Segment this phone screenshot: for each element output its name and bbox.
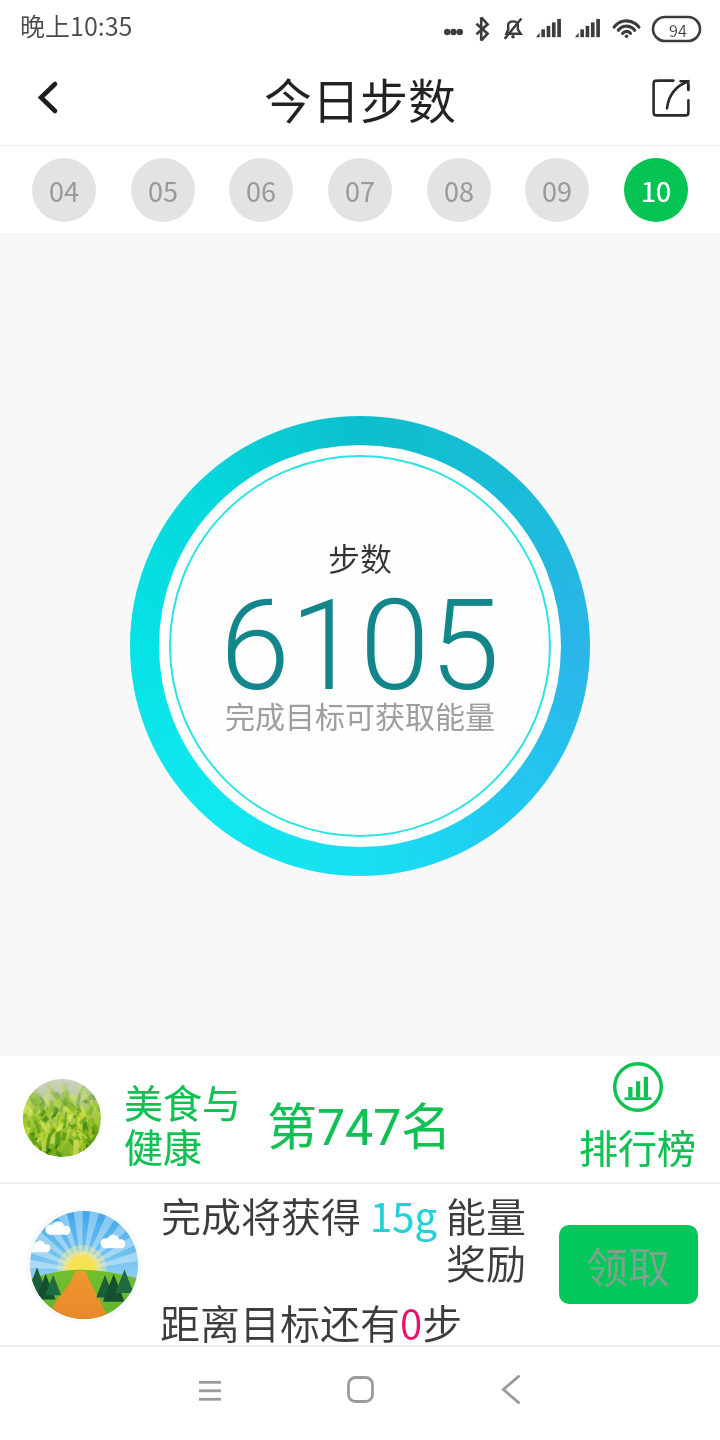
staticText: 晚上10:35: [20, 7, 133, 43]
button[interactable]: 排行榜: [578, 1062, 697, 1174]
button[interactable]: 05: [131, 158, 195, 222]
staticText: 07: [345, 171, 375, 210]
staticText: 美食与 健康: [124, 1073, 242, 1173]
button[interactable]: 美食与 健康: [0, 1056, 720, 1182]
button[interactable]: 04: [32, 158, 96, 222]
staticText: 05: [148, 171, 178, 210]
staticText: 06: [246, 171, 276, 210]
button[interactable]: Home: [315, 1344, 405, 1434]
button[interactable]: Share: [631, 58, 711, 138]
button[interactable]: 07: [328, 158, 392, 222]
staticText: 6105: [220, 572, 500, 720]
button[interactable]: 完成将获得 15g 能量奖励: [0, 1184, 720, 1345]
button[interactable]: 领取: [559, 1225, 698, 1304]
button[interactable]: 10: [624, 158, 688, 222]
button[interactable]: 06: [229, 158, 293, 222]
button[interactable]: Menu: [165, 1344, 255, 1434]
staticText: 步数: [328, 534, 393, 580]
staticText: 领取: [586, 1234, 671, 1295]
staticText: 04: [49, 171, 79, 210]
button[interactable]: 09: [525, 158, 589, 222]
staticText: 排行榜: [579, 1118, 697, 1174]
staticText: 今日步数: [264, 63, 457, 133]
button[interactable]: 08: [427, 158, 491, 222]
staticText: 第747名: [267, 1087, 452, 1159]
button[interactable]: Back: [8, 57, 88, 137]
staticText: 完成目标可获取能量: [225, 693, 495, 736]
staticText: 08: [444, 171, 474, 210]
button[interactable]: Back: [466, 1344, 556, 1434]
staticText: 09: [542, 171, 572, 210]
staticText: 94: [669, 18, 687, 41]
staticText: 完成将获得 15g 能量奖励: [160, 1186, 526, 1290]
staticText: 10: [641, 171, 671, 210]
staticText: 距离目标还有0步: [160, 1293, 463, 1347]
